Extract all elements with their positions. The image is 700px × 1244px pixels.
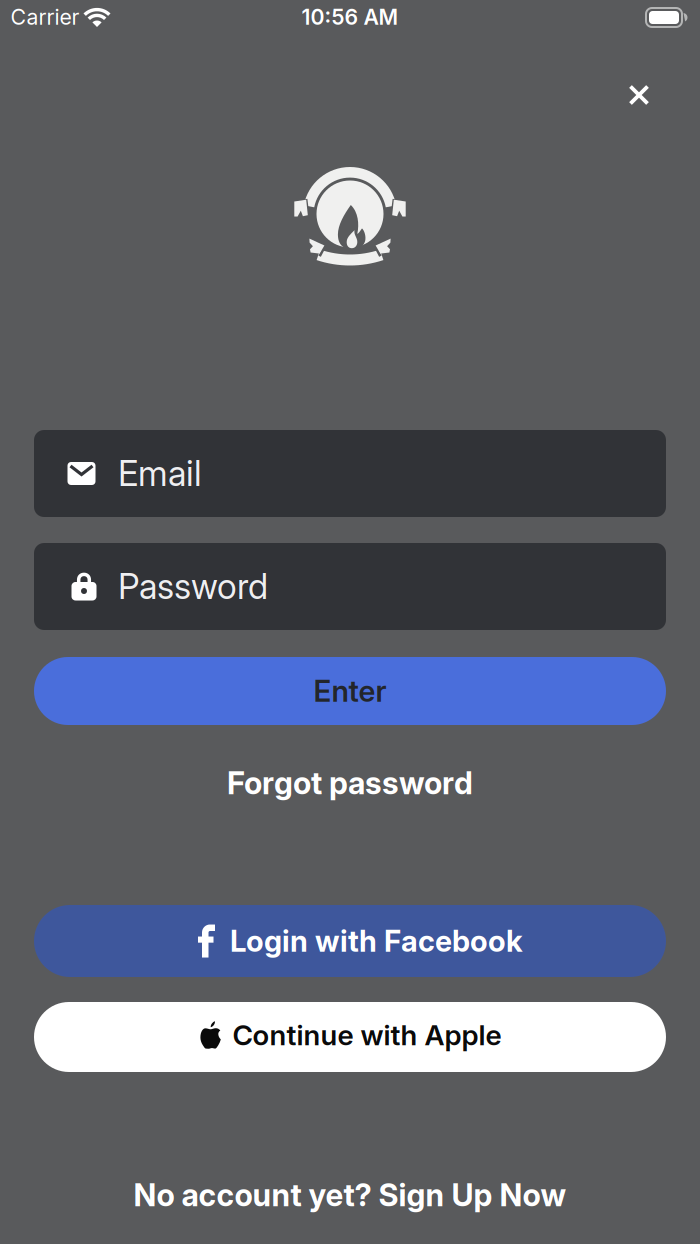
staticText: 10:56 AM [301, 4, 398, 30]
staticText: Email [118, 453, 202, 494]
staticText: Login with Facebook [230, 924, 523, 958]
staticText: No account yet? Sign Up Now [133, 1177, 566, 1213]
staticText: Enter [313, 674, 386, 708]
staticText: Carrier [10, 4, 79, 30]
staticText: Password [118, 566, 268, 607]
staticText: Forgot password [227, 765, 473, 801]
staticText: Continue with Apple [232, 1018, 501, 1051]
